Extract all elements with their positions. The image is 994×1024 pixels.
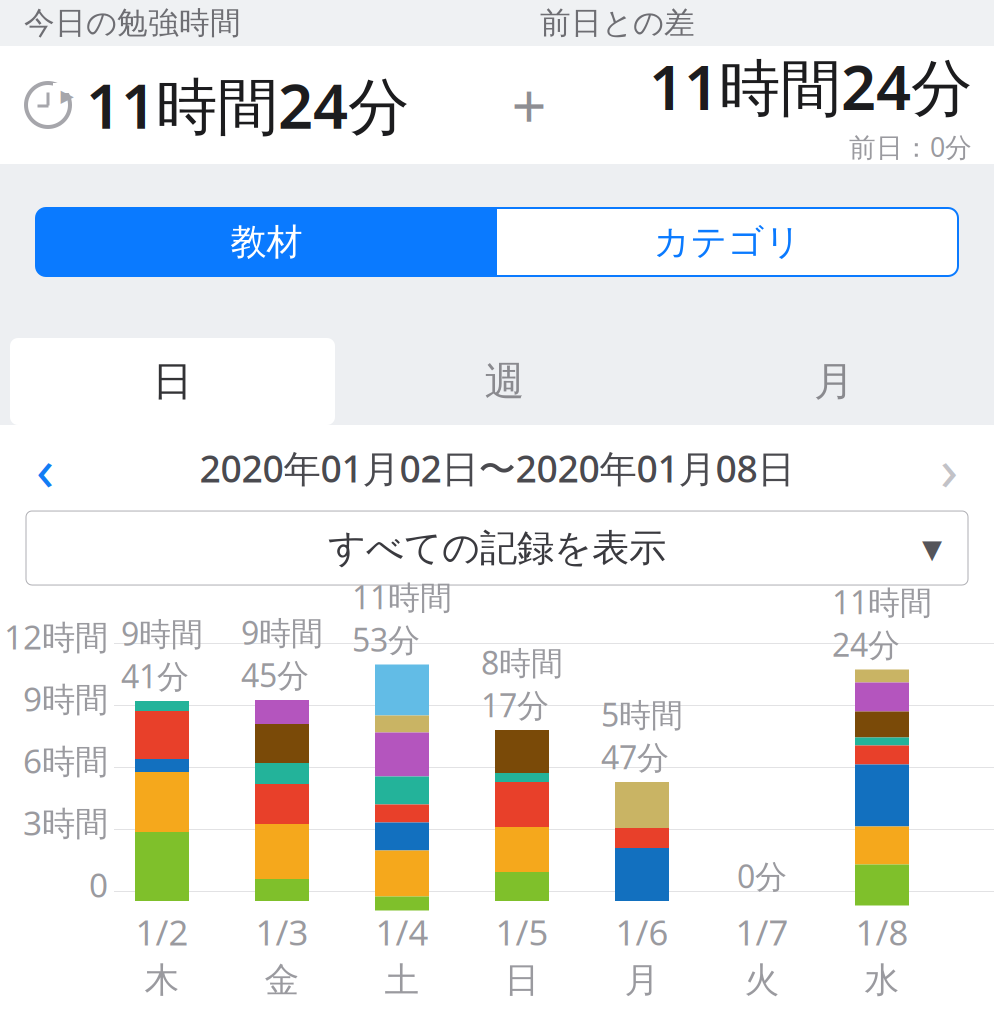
- staticText: 1/5: [495, 909, 548, 955]
- staticText: 今日の勉強時間: [24, 4, 241, 42]
- button[interactable]: すべての記録を表示: [26, 511, 968, 585]
- staticText: 前日：0分: [849, 129, 972, 164]
- staticText: 1/6: [615, 909, 668, 955]
- staticText: 3時間: [23, 800, 108, 845]
- staticText: 日: [152, 357, 192, 406]
- staticText: 1/8: [855, 909, 908, 955]
- staticText: ›: [940, 429, 958, 507]
- staticText: ▸: [60, 80, 73, 110]
- staticText: 11時間24分: [649, 46, 972, 127]
- staticText: +: [511, 64, 546, 146]
- staticText: カテゴリ: [653, 220, 801, 264]
- staticText: 1/2: [135, 909, 188, 955]
- button[interactable]: カテゴリ: [497, 208, 958, 276]
- button[interactable]: 日: [10, 338, 335, 425]
- button[interactable]: 教材: [36, 208, 497, 276]
- staticText: 土: [384, 959, 419, 1002]
- staticText: 11時間 53分: [352, 575, 452, 660]
- button[interactable]: 前の週: [10, 438, 80, 498]
- staticText: 5時間 47分: [601, 693, 683, 778]
- staticText: ‹: [36, 429, 54, 507]
- staticText: 水: [864, 959, 899, 1002]
- staticText: すべての記録を表示: [328, 525, 666, 571]
- staticText: 月: [624, 959, 659, 1002]
- staticText: 0: [89, 862, 108, 907]
- staticText: 木: [144, 959, 179, 1002]
- staticText: 11時間 24分: [832, 580, 932, 665]
- button[interactable]: 月: [674, 338, 994, 425]
- staticText: 6時間: [23, 738, 108, 783]
- staticText: 週: [484, 357, 524, 406]
- staticText: 2020年01月02日〜2020年01月08日: [199, 443, 794, 493]
- staticText: 9時間: [23, 676, 108, 721]
- staticText: ▾: [922, 525, 942, 571]
- staticText: 1/7: [735, 909, 788, 955]
- staticText: 1/3: [255, 909, 308, 955]
- staticText: 8時間 17分: [481, 641, 563, 726]
- button[interactable]: 次の週: [914, 438, 984, 498]
- staticText: 月: [814, 357, 854, 406]
- staticText: 1/4: [375, 909, 428, 955]
- staticText: 金: [264, 959, 299, 1002]
- staticText: 9時間 45分: [241, 611, 323, 696]
- staticText: 9時間 41分: [121, 612, 203, 697]
- staticText: 11時間24分: [86, 64, 409, 146]
- staticText: 前日との差: [540, 4, 695, 42]
- staticText: 日: [504, 959, 539, 1002]
- staticText: 火: [744, 959, 779, 1002]
- staticText: 12時間: [4, 614, 108, 659]
- button[interactable]: 週: [344, 338, 664, 425]
- staticText: 0分: [737, 854, 787, 897]
- staticText: 教材: [230, 220, 302, 264]
